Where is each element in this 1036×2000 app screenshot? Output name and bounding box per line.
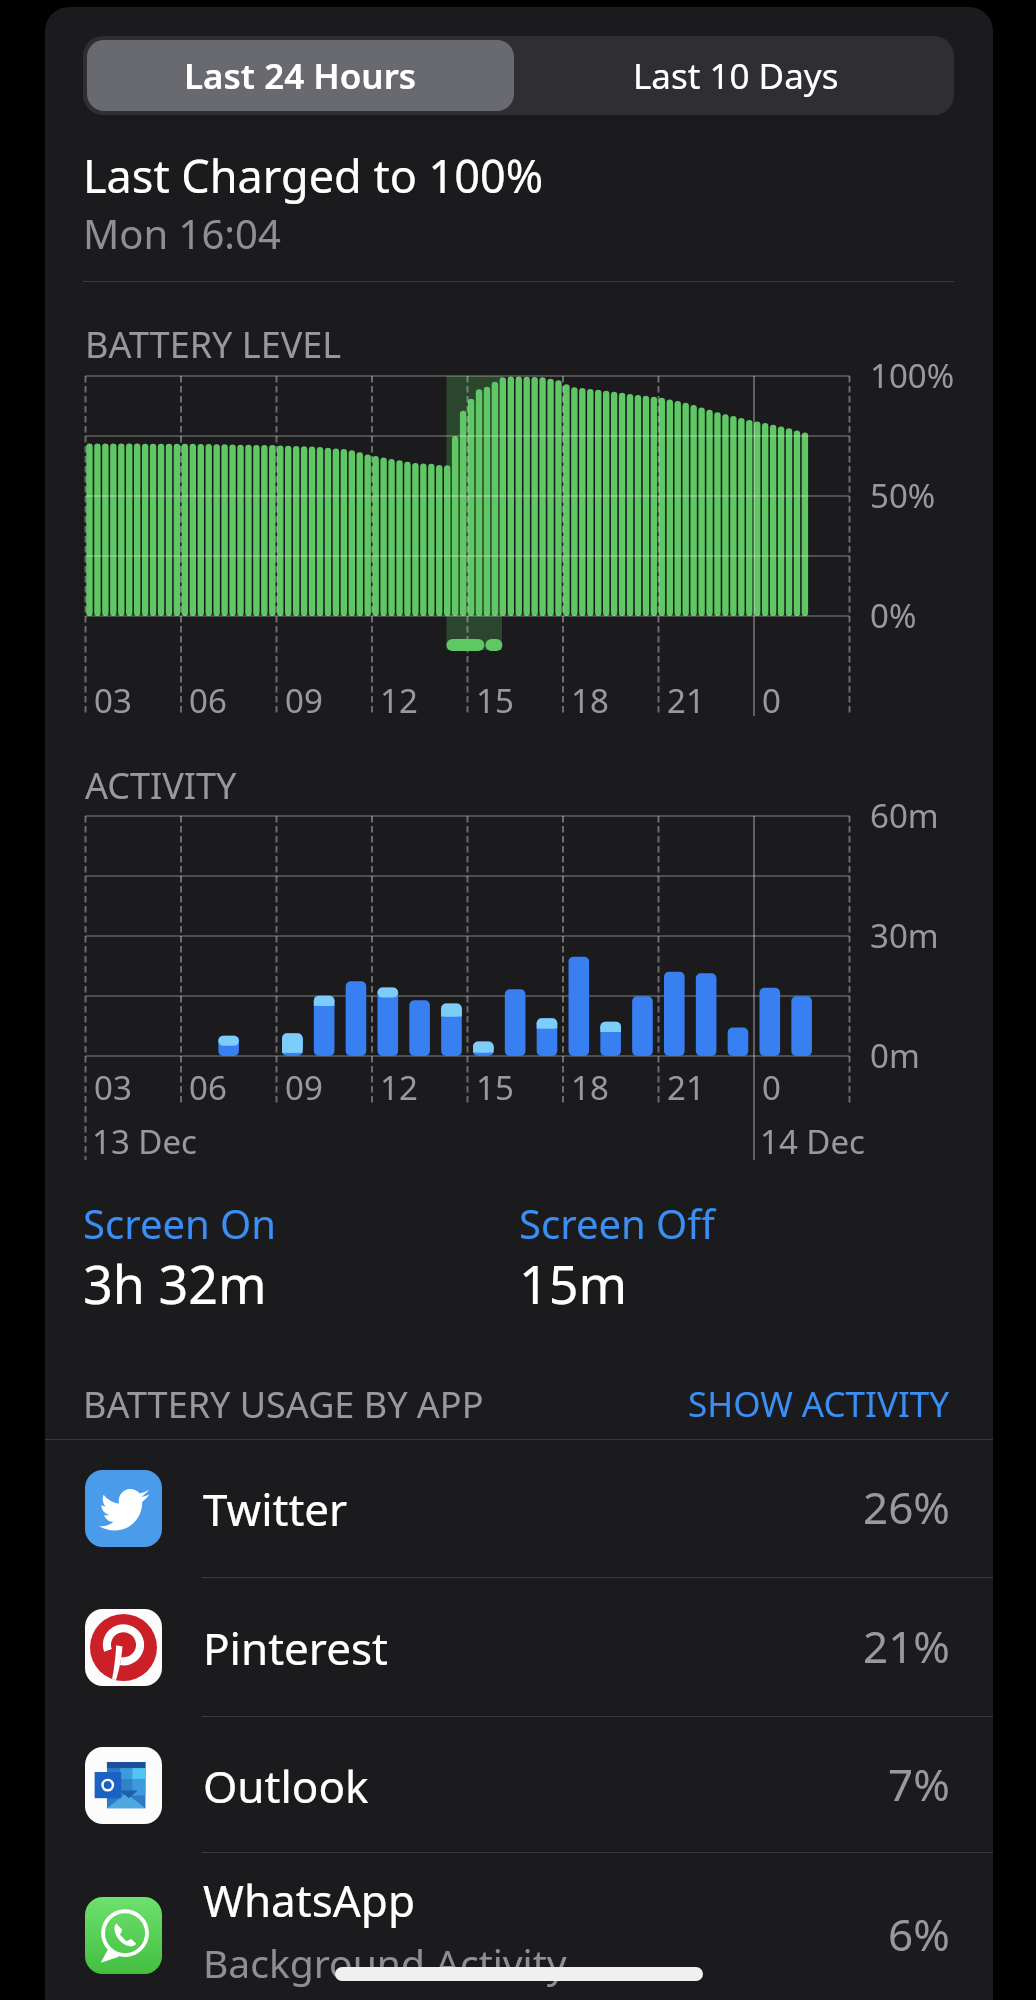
staticText: 30m	[870, 913, 939, 958]
staticText: 15	[476, 678, 514, 723]
staticText: 21	[667, 1065, 705, 1110]
staticText: 0	[762, 1065, 781, 1110]
other: Outlook	[85, 1747, 162, 1824]
button[interactable]	[45, 1866, 993, 2000]
staticText: BATTERY LEVEL	[85, 320, 342, 369]
staticText: Last Charged to 100%	[83, 145, 544, 206]
staticText: 03	[94, 1065, 132, 1110]
staticText: 09	[285, 678, 323, 723]
other: Twitter	[85, 1470, 162, 1547]
button[interactable]: Last 24 Hours	[87, 40, 514, 111]
staticText: 06	[189, 1065, 227, 1110]
staticText: 100%	[870, 353, 955, 398]
staticText: 15	[476, 1065, 514, 1110]
staticText: 09	[285, 1065, 323, 1110]
other: Pinterest	[85, 1609, 162, 1686]
staticText: 3h 32m	[83, 1248, 267, 1319]
button[interactable]	[45, 1439, 993, 1577]
staticText: Screen On	[83, 1196, 277, 1250]
staticText: BATTERY USAGE BY APP	[83, 1380, 484, 1429]
staticText: Last 10 Days	[633, 52, 839, 100]
staticText: 13 Dec	[92, 1119, 197, 1164]
button[interactable]	[45, 1716, 993, 1854]
staticText: Screen Off	[519, 1196, 715, 1250]
staticText: 21	[667, 678, 705, 723]
staticText: 03	[94, 678, 132, 723]
staticText: 06	[189, 678, 227, 723]
button[interactable]	[45, 1578, 993, 1716]
button[interactable]: Last 10 Days	[518, 36, 954, 115]
staticText: 18	[571, 678, 609, 723]
staticText: 14 Dec	[760, 1119, 865, 1164]
staticText: Twitter	[203, 1479, 348, 1539]
staticText: WhatsApp	[203, 1870, 415, 1930]
staticText: 50%	[870, 473, 936, 518]
staticText: Background Activity	[203, 1936, 567, 1989]
staticText: SHOW ACTIVITY	[688, 1380, 950, 1428]
other: WhatsApp	[85, 1897, 162, 1974]
staticText: 26%	[863, 1477, 950, 1537]
staticText: Outlook	[203, 1756, 369, 1816]
staticText: 60m	[870, 793, 939, 838]
staticText: 0	[762, 678, 781, 723]
staticText: 12	[380, 1065, 418, 1110]
staticText: ACTIVITY	[85, 761, 237, 810]
staticText: 7%	[888, 1754, 950, 1814]
staticText: 0%	[870, 593, 917, 638]
staticText: 15m	[519, 1248, 628, 1319]
staticText: 21%	[863, 1616, 950, 1676]
staticText: 18	[571, 1065, 609, 1110]
staticText: 0m	[870, 1033, 920, 1078]
staticText: Last 24 Hours	[184, 52, 417, 100]
staticText: Mon 16:04	[83, 206, 281, 260]
staticText: 12	[380, 678, 418, 723]
staticText: 6%	[888, 1904, 950, 1964]
button[interactable]: SHOW ACTIVITY	[688, 1380, 950, 1428]
staticText: Pinterest	[203, 1618, 388, 1678]
